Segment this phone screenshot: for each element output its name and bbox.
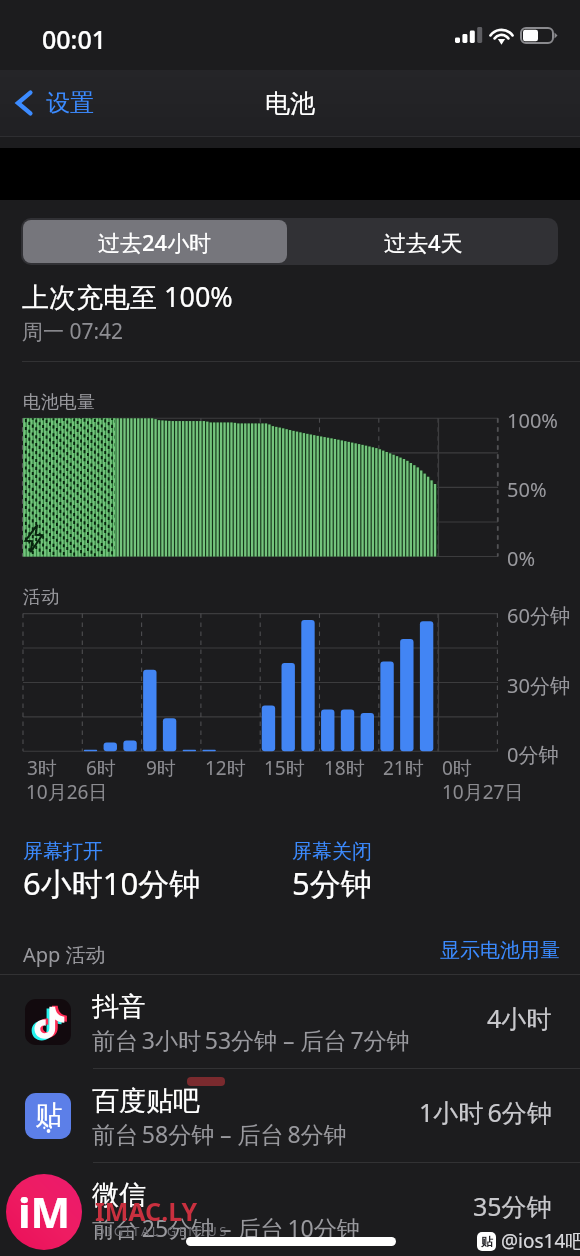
staticText: 贴 [481, 1234, 493, 1249]
button[interactable]: Back [14, 78, 94, 128]
staticText: 15时 [264, 755, 305, 781]
staticText: 电池 [265, 88, 315, 119]
staticText: DIGITAL GENIUS [95, 1222, 229, 1240]
staticText: 6小时10分钟 [23, 862, 201, 904]
staticText: 60分钟 [507, 602, 570, 629]
staticText: 12时 [205, 755, 246, 781]
button[interactable]: 微信 [0, 1163, 580, 1256]
staticText: 前台 58分钟 – 后台 8分钟 [92, 1118, 347, 1149]
button[interactable]: 贴 [0, 1069, 580, 1163]
staticText: 35分钟 [473, 1189, 552, 1223]
other: Back [14, 89, 34, 117]
staticText: 前台 3小时 53分钟 – 后台 7分钟 [92, 1024, 410, 1055]
staticText: 活动 [23, 586, 59, 609]
button[interactable]: 抖音 [0, 975, 580, 1069]
staticText: 显示电池用量 [440, 938, 560, 963]
staticText: 设置 [46, 88, 94, 118]
staticText: 100% [507, 407, 558, 434]
staticText: 21时 [383, 755, 424, 781]
staticText: @ios14吧 [501, 1228, 580, 1254]
staticText: 30分钟 [507, 672, 570, 699]
staticText: 5分钟 [292, 862, 372, 904]
staticText: 00:01 [42, 22, 107, 56]
staticText: App 活动 [23, 941, 106, 968]
staticText: 10月26日 [26, 779, 108, 805]
staticText: 3时 [27, 755, 57, 781]
staticText: 4小时 [487, 1001, 552, 1035]
staticText: 前台 25分钟 – 后台 10分钟 [92, 1212, 360, 1243]
button[interactable]: 过去4天 [289, 218, 558, 265]
staticText: 6时 [86, 755, 116, 781]
staticText: 10月27日 [442, 779, 524, 805]
staticText: 抖音 [92, 990, 146, 1024]
button[interactable]: 显示电池用量 [440, 938, 560, 963]
button[interactable]: 过去24小时 [23, 220, 287, 263]
staticText: IMAC.LY [95, 1194, 198, 1228]
staticText: 0分钟 [507, 741, 559, 768]
staticText: 屏幕打开 [23, 839, 103, 864]
staticText: 0时 [442, 755, 472, 781]
staticText: 电池电量 [23, 391, 95, 414]
staticText: 屏幕关闭 [292, 839, 372, 864]
staticText: 过去4天 [384, 227, 463, 257]
staticText: 9时 [146, 755, 176, 781]
staticText: 18时 [324, 755, 365, 781]
staticText: 百度贴吧 [92, 1084, 200, 1118]
staticText: iM [18, 1183, 71, 1240]
staticText: 1小时 6分钟 [419, 1095, 552, 1129]
staticText: 贴 [35, 1098, 62, 1132]
staticText: 上次充电至 100% [22, 278, 233, 315]
staticText: 50% [507, 476, 547, 503]
staticText: 过去24小时 [98, 227, 212, 257]
staticText: 周一 07:42 [22, 317, 124, 346]
staticText: 0% [507, 545, 536, 572]
staticText: 微信 [92, 1178, 146, 1212]
